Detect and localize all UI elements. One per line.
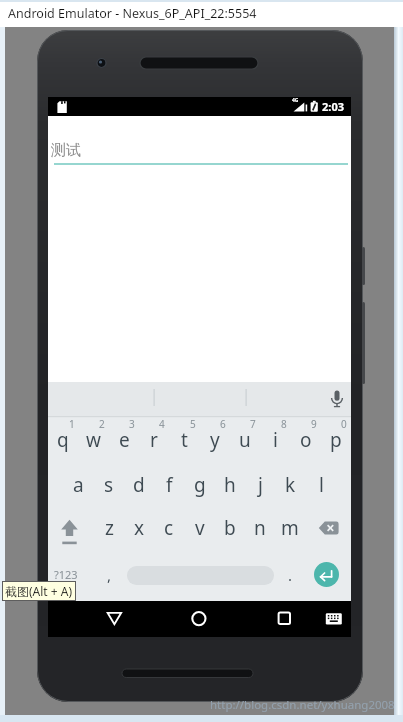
staticText: 9 [311, 417, 317, 429]
button[interactable]: a [63, 463, 93, 507]
staticText: x [134, 515, 145, 541]
staticText: u [239, 427, 251, 453]
staticText: w [86, 427, 101, 453]
button[interactable]: p [321, 418, 351, 462]
staticText: s [104, 472, 114, 498]
staticText: 1 [69, 417, 75, 429]
button[interactable]: d [124, 463, 154, 507]
staticText: b [224, 515, 236, 541]
staticText: a [73, 472, 84, 498]
staticText: 3 [129, 417, 135, 429]
staticText: 8 [281, 417, 287, 429]
staticText: 5 [190, 417, 196, 429]
staticText: 2 [99, 417, 105, 429]
staticText: 6 [220, 417, 226, 429]
staticText: m [281, 515, 299, 541]
button[interactable] [314, 562, 339, 587]
button[interactable]: g [185, 463, 215, 507]
button[interactable]: x [124, 506, 154, 550]
staticText: http://blog.csdn.net/yxhuang2008 [210, 697, 395, 713]
button[interactable]: h [215, 463, 245, 507]
button[interactable]: r [139, 418, 169, 462]
button[interactable]: l [306, 463, 336, 507]
staticText: Android Emulator - Nexus_6P_API_22:5554 [8, 5, 257, 22]
button[interactable] [96, 601, 132, 636]
button[interactable]: c [154, 506, 184, 550]
button[interactable]: b [215, 506, 245, 550]
staticText: j [258, 472, 263, 498]
staticText: . [288, 565, 293, 585]
staticText: 0 [341, 417, 347, 429]
button[interactable]: m [275, 506, 305, 550]
button[interactable] [324, 386, 350, 412]
staticText: i [273, 427, 278, 453]
staticText: p [330, 427, 342, 453]
button[interactable] [266, 601, 302, 636]
button[interactable]: j [245, 463, 275, 507]
button[interactable]: , [99, 555, 119, 595]
staticText: 4 [159, 417, 165, 429]
button[interactable]: w [78, 418, 108, 462]
staticText: 2:03 [322, 99, 344, 114]
staticText: o [300, 427, 312, 453]
button[interactable]: ?123 [48, 554, 84, 594]
staticText: c [164, 515, 174, 541]
staticText: l [319, 472, 324, 498]
staticText: ?123 [54, 567, 78, 582]
staticText: h [224, 472, 236, 498]
button[interactable]: q [48, 418, 78, 462]
staticText: f [166, 472, 173, 498]
button[interactable]: e [109, 418, 139, 462]
button[interactable]: i [260, 418, 290, 462]
button[interactable]: o [291, 418, 321, 462]
button[interactable]: k [275, 463, 305, 507]
button[interactable] [181, 601, 217, 636]
staticText: 4G [292, 97, 299, 104]
button[interactable]: y [200, 418, 230, 462]
button[interactable] [315, 507, 347, 549]
staticText: v [195, 515, 205, 541]
staticText: 测试 [51, 141, 81, 160]
button[interactable] [55, 507, 85, 549]
button[interactable]: Android Emulator - Nexus_6P_API_22:5554 [0, 0, 403, 27]
staticText: n [254, 515, 266, 541]
button[interactable]: z [94, 506, 124, 550]
button[interactable]: s [94, 463, 124, 507]
staticText: z [105, 515, 114, 541]
staticText: 截图(Alt + A) [5, 583, 73, 599]
staticText: g [194, 472, 206, 498]
staticText: 7 [250, 417, 256, 429]
button[interactable]: 测试 [50, 139, 340, 161]
button[interactable]: u [230, 418, 260, 462]
staticText: r [150, 427, 158, 453]
staticText: y [210, 427, 220, 453]
button[interactable]: v [185, 506, 215, 550]
staticText: k [285, 472, 296, 498]
staticText: q [57, 427, 69, 453]
button[interactable]: f [154, 463, 184, 507]
button[interactable]: t [169, 418, 199, 462]
staticText: t [181, 427, 188, 453]
staticText: d [133, 472, 145, 498]
button[interactable]: . [280, 555, 300, 595]
button[interactable] [321, 604, 347, 632]
button[interactable]: n [245, 506, 275, 550]
staticText: , [107, 565, 112, 585]
staticText: e [119, 427, 130, 453]
